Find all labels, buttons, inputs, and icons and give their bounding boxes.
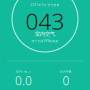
staticText: 0 [62, 72, 69, 88]
staticText: 优于全国98%的家庭 [31, 39, 58, 43]
staticText: 2021年5月 空气质量 [30, 3, 59, 7]
staticText: 043 [25, 6, 64, 36]
staticText: 室内PM2.5 [16, 70, 31, 73]
staticText: 室内空气 [35, 31, 55, 37]
staticText: 0.0 [15, 72, 32, 88]
staticText: 室内甲醛 [60, 70, 72, 73]
